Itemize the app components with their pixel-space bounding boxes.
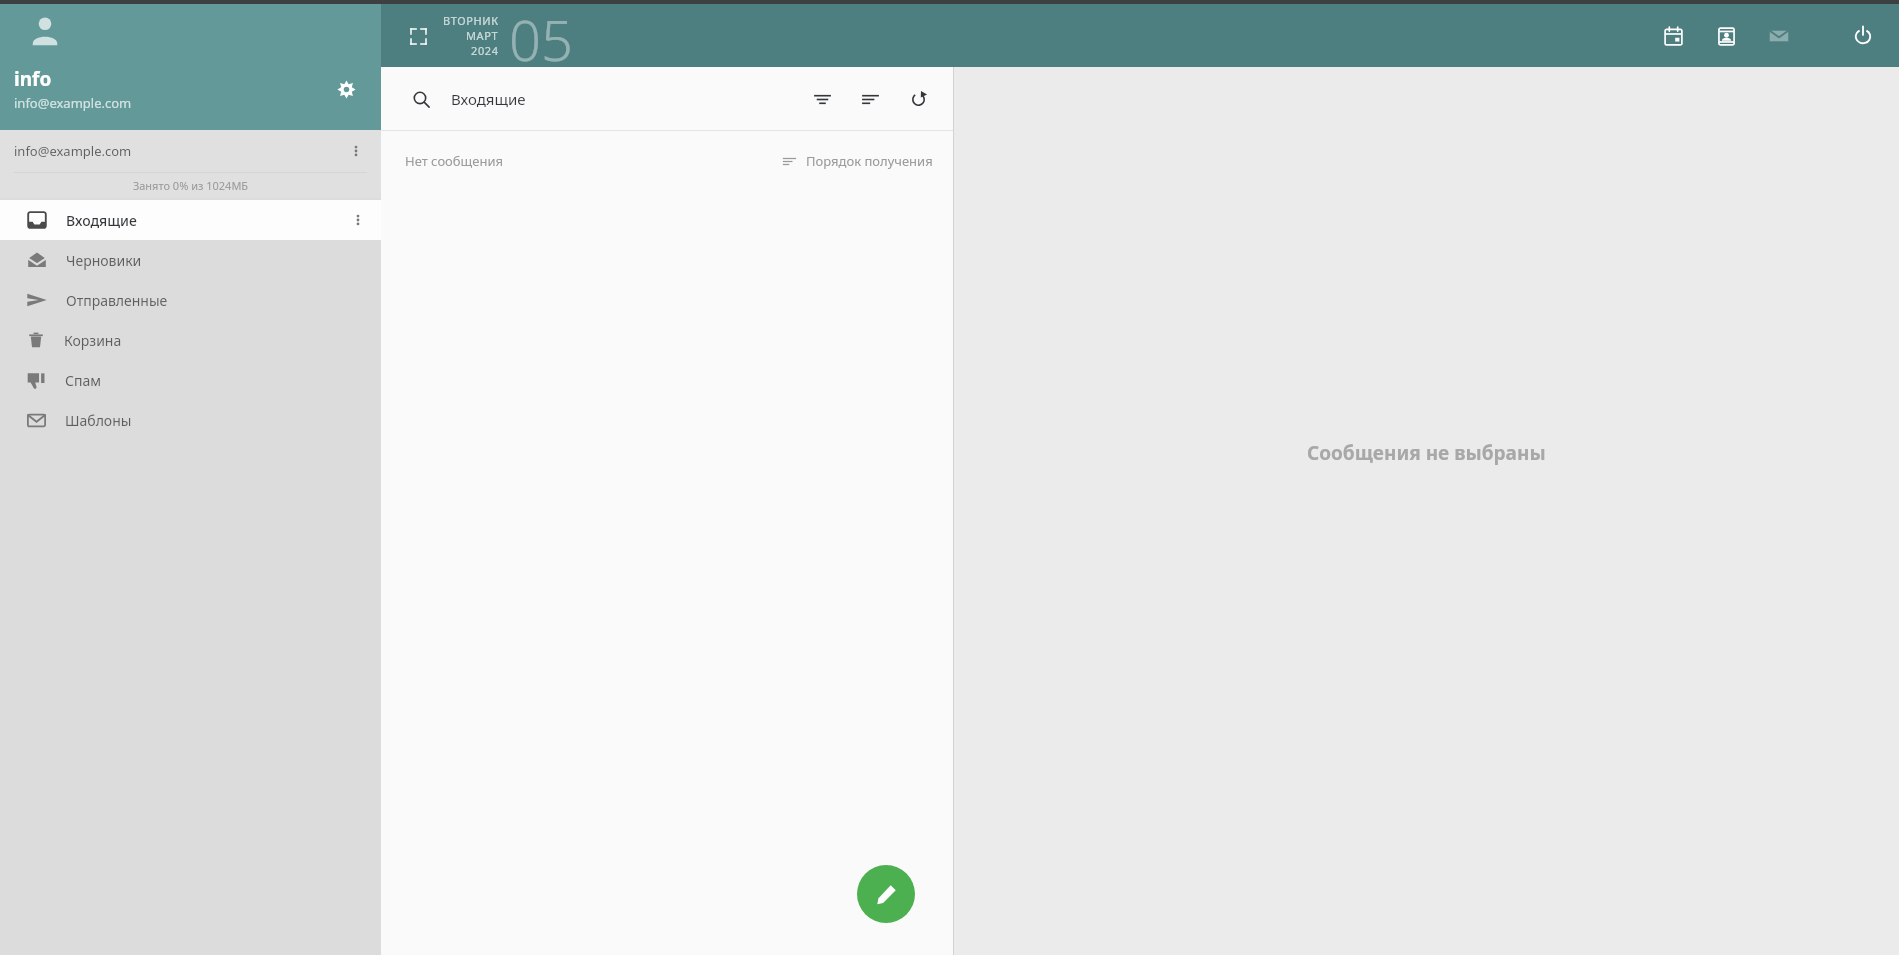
- staticText: 05: [509, 1, 573, 64]
- staticText: info: [14, 66, 52, 92]
- button[interactable]: Спам: [0, 360, 381, 400]
- button[interactable]: Написать письмо: [857, 865, 915, 923]
- staticText: Корзина: [64, 331, 122, 350]
- staticText: info@example.com: [14, 94, 132, 112]
- staticText: Шаблоны: [65, 411, 132, 430]
- staticText: ВТОРНИК: [443, 13, 499, 28]
- button[interactable]: Полный экран: [395, 13, 441, 59]
- button[interactable]: Поиск: [405, 83, 437, 115]
- button[interactable]: Сортировка: [851, 80, 889, 118]
- staticText: Сообщения не выбраны: [1307, 440, 1546, 466]
- button[interactable]: Выход: [1837, 10, 1889, 62]
- button[interactable]: Входящие: [0, 200, 381, 240]
- button[interactable]: Обновить: [899, 80, 937, 118]
- staticText: Отправленные: [66, 291, 168, 310]
- staticText: Занято 0% из 1024МБ: [0, 178, 381, 193]
- button[interactable]: Почта: [1753, 10, 1805, 62]
- button[interactable]: Фильтр: [803, 80, 841, 118]
- button[interactable]: Отправленные: [0, 280, 381, 320]
- staticText: Входящие: [66, 211, 137, 230]
- button[interactable]: Опции папки: [345, 207, 371, 233]
- staticText: 2024: [471, 43, 499, 58]
- button[interactable]: info@example.com: [0, 130, 381, 172]
- button[interactable]: Черновики: [0, 240, 381, 280]
- button[interactable]: Опции аккаунта: [343, 138, 369, 164]
- staticText: Черновики: [66, 251, 142, 270]
- staticText: Порядок получения: [806, 152, 933, 170]
- button[interactable]: Шаблоны: [0, 400, 381, 440]
- button[interactable]: Корзина: [0, 320, 381, 360]
- staticText: Входящие: [451, 89, 526, 109]
- button[interactable]: Контакты: [1700, 10, 1752, 62]
- button[interactable]: Порядок получения: [778, 146, 937, 176]
- button[interactable]: info: [0, 4, 381, 130]
- staticText: МАРТ: [466, 28, 499, 43]
- staticText: Нет сообщения: [405, 152, 503, 170]
- button[interactable]: Настройки: [329, 72, 363, 106]
- staticText: Спам: [65, 371, 101, 390]
- button[interactable]: Календарь: [1647, 10, 1699, 62]
- staticText: info@example.com: [14, 142, 132, 160]
